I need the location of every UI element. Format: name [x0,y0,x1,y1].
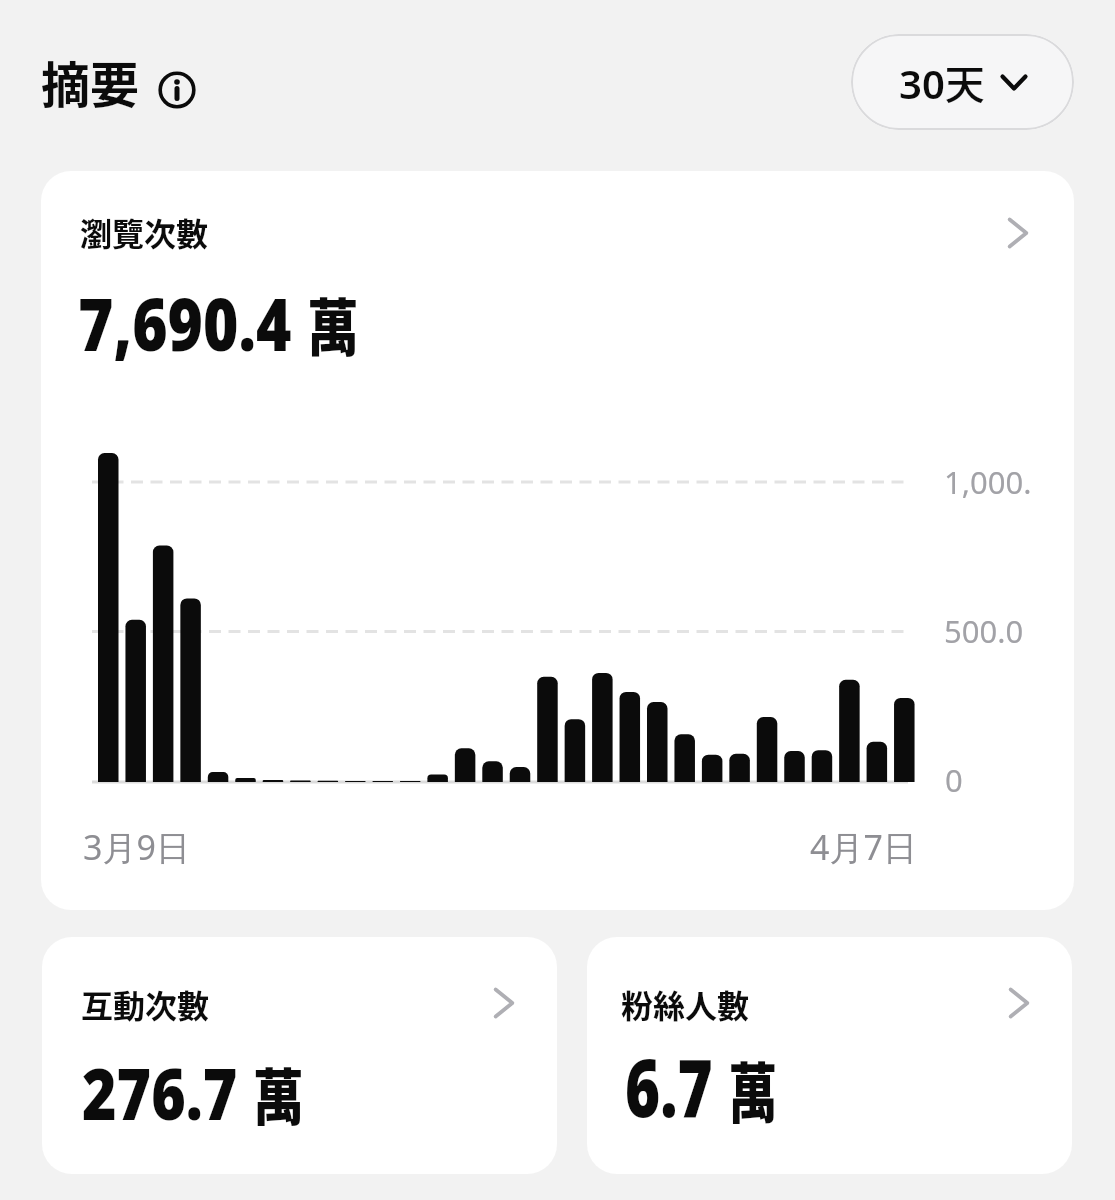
staticText: 3月9日 [83,824,190,870]
staticText: 瀏覽次數 [80,209,209,255]
staticText: 0 [945,759,963,801]
staticText: 276.7 萬 [82,1045,305,1140]
staticText: 6.7 萬 [625,1033,778,1141]
staticText: 互動次數 [81,981,210,1027]
button[interactable]: 30天 [851,34,1074,130]
button[interactable]: 瀏覽次數 [41,171,1074,910]
button[interactable]: 互動次數 [42,937,557,1174]
button[interactable]: 粉絲人數 [587,937,1072,1174]
staticText: 7,690.4 萬 [78,274,359,372]
staticText: 30天 [899,53,985,111]
staticText: 4月7日 [810,824,917,870]
staticText: 摘要 [41,46,140,117]
staticText: 500.0 [944,610,1024,652]
staticText: 1,000. [944,461,1032,503]
staticText: 粉絲人數 [621,981,750,1027]
